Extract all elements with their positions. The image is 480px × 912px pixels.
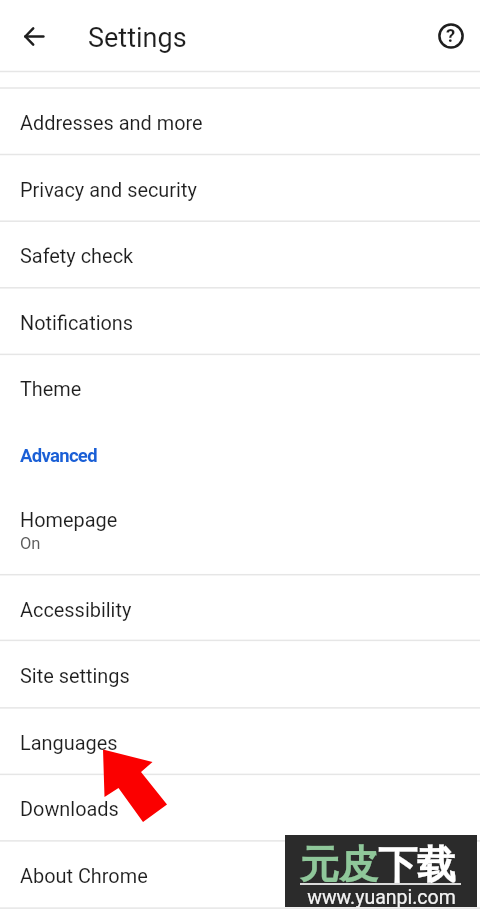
button[interactable]: Safety check bbox=[0, 221, 480, 288]
staticText: ? bbox=[446, 25, 456, 47]
staticText: Downloads bbox=[20, 798, 119, 821]
button[interactable]: Notifications bbox=[0, 288, 480, 355]
staticText: Accessibility bbox=[20, 599, 132, 622]
staticText: Homepage bbox=[20, 509, 118, 532]
button[interactable]: Accessibility bbox=[0, 575, 480, 641]
staticText: About Chrome bbox=[20, 865, 148, 888]
button[interactable]: Theme bbox=[0, 354, 480, 421]
button[interactable]: Downloads bbox=[0, 774, 480, 841]
staticText: 元皮 bbox=[300, 840, 378, 889]
staticText: Addresses and more bbox=[20, 112, 203, 135]
staticText: www.yuanpi.com bbox=[307, 886, 456, 909]
staticText: On bbox=[20, 534, 41, 553]
button[interactable]: Site settings bbox=[0, 640, 480, 708]
staticText: Advanced bbox=[20, 445, 97, 467]
button[interactable]: Help bbox=[431, 16, 471, 56]
staticText: Languages bbox=[20, 732, 118, 755]
button[interactable]: Privacy and security bbox=[0, 155, 480, 222]
staticText: Notifications bbox=[20, 312, 134, 335]
staticText: Privacy and security bbox=[20, 179, 197, 202]
button[interactable]: Homepage bbox=[0, 487, 480, 574]
button[interactable]: About Chrome bbox=[0, 841, 480, 908]
button[interactable]: Advanced bbox=[0, 421, 480, 487]
button[interactable]: Back bbox=[14, 16, 54, 56]
staticText: Safety check bbox=[20, 245, 134, 268]
button[interactable]: Addresses and more bbox=[0, 88, 480, 155]
staticText: Site settings bbox=[20, 665, 130, 688]
staticText: Settings bbox=[88, 22, 187, 54]
button[interactable]: Languages bbox=[0, 708, 480, 775]
staticText: Theme bbox=[20, 378, 82, 401]
staticText: 下载 bbox=[378, 840, 456, 889]
